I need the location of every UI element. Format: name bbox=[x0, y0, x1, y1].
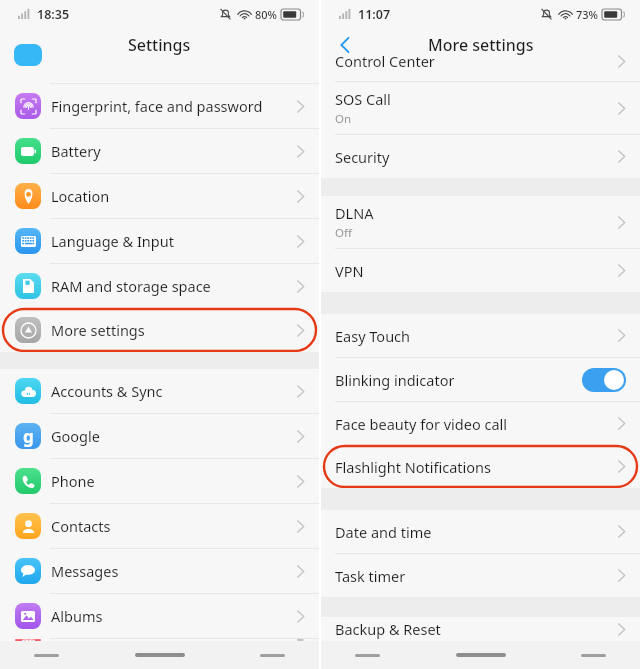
staticText: VPN bbox=[335, 261, 364, 281]
button[interactable]: Albums bbox=[0, 594, 319, 638]
staticText: Albums bbox=[51, 606, 103, 626]
button[interactable]: Security bbox=[321, 135, 640, 178]
staticText: Settings bbox=[128, 34, 191, 56]
staticText: Contacts bbox=[51, 516, 111, 536]
staticText: DLNA bbox=[335, 203, 374, 223]
staticText: Task timer bbox=[335, 566, 406, 586]
button[interactable]: RAM and storage space bbox=[0, 264, 319, 308]
staticText: Messages bbox=[51, 561, 119, 581]
staticText: g bbox=[23, 425, 34, 448]
staticText: Flashlight Notifications bbox=[335, 457, 491, 477]
staticText: On bbox=[335, 111, 352, 127]
button[interactable]: g bbox=[0, 414, 319, 458]
staticText: Off bbox=[335, 225, 352, 241]
button[interactable]: SOS Call bbox=[321, 82, 640, 134]
staticText: Phone bbox=[51, 471, 95, 491]
staticText: 73% bbox=[576, 7, 598, 22]
staticText: Google bbox=[51, 426, 100, 446]
staticText: Battery bbox=[51, 141, 101, 161]
staticText: 11:07 bbox=[358, 6, 391, 23]
button[interactable]: Phone bbox=[0, 459, 319, 503]
button[interactable]: Contacts bbox=[0, 504, 319, 548]
staticText: Backup & Reset bbox=[335, 619, 441, 639]
staticText: More settings bbox=[51, 320, 145, 340]
staticText: Easy Touch bbox=[335, 326, 411, 346]
staticText: Fingerprint, face and password bbox=[51, 96, 263, 116]
button[interactable]: Calendar bbox=[0, 639, 319, 641]
staticText: SOS Call bbox=[335, 89, 391, 109]
button[interactable]: Date and time bbox=[321, 510, 640, 553]
staticText: Accounts & Sync bbox=[51, 381, 163, 401]
button[interactable]: Face beauty for video call bbox=[321, 402, 640, 445]
button[interactable]: Battery bbox=[0, 129, 319, 173]
button[interactable]: Blinking indicator bbox=[321, 358, 640, 401]
button[interactable]: Fingerprint, face and password bbox=[0, 84, 319, 128]
staticText: Blinking indicator bbox=[335, 370, 455, 390]
button[interactable]: Task timer bbox=[321, 554, 640, 597]
staticText: 18:35 bbox=[37, 6, 70, 23]
staticText: Date and time bbox=[335, 522, 432, 542]
staticText: More settings bbox=[428, 34, 534, 56]
button[interactable]: Easy Touch bbox=[321, 314, 640, 357]
button[interactable]: Backup & Reset bbox=[321, 617, 640, 641]
staticText: RAM and storage space bbox=[51, 276, 211, 296]
button[interactable]: Back bbox=[329, 29, 361, 61]
button[interactable]: Accounts & Sync bbox=[0, 369, 319, 413]
button[interactable]: DLNA bbox=[321, 196, 640, 248]
staticText: Language & Input bbox=[51, 231, 174, 251]
button[interactable]: More settings bbox=[0, 308, 319, 352]
button[interactable]: Messages bbox=[0, 549, 319, 593]
staticText: Security bbox=[335, 147, 390, 167]
button[interactable]: Flashlight Notifications bbox=[321, 445, 640, 488]
staticText: Face beauty for video call bbox=[335, 414, 507, 434]
button[interactable]: Location bbox=[0, 174, 319, 218]
button[interactable]: Language & Input bbox=[0, 219, 319, 263]
button[interactable]: VPN bbox=[321, 249, 640, 292]
staticText: Location bbox=[51, 186, 110, 206]
staticText: Control Center bbox=[335, 51, 435, 71]
staticText: 80% bbox=[255, 7, 277, 22]
